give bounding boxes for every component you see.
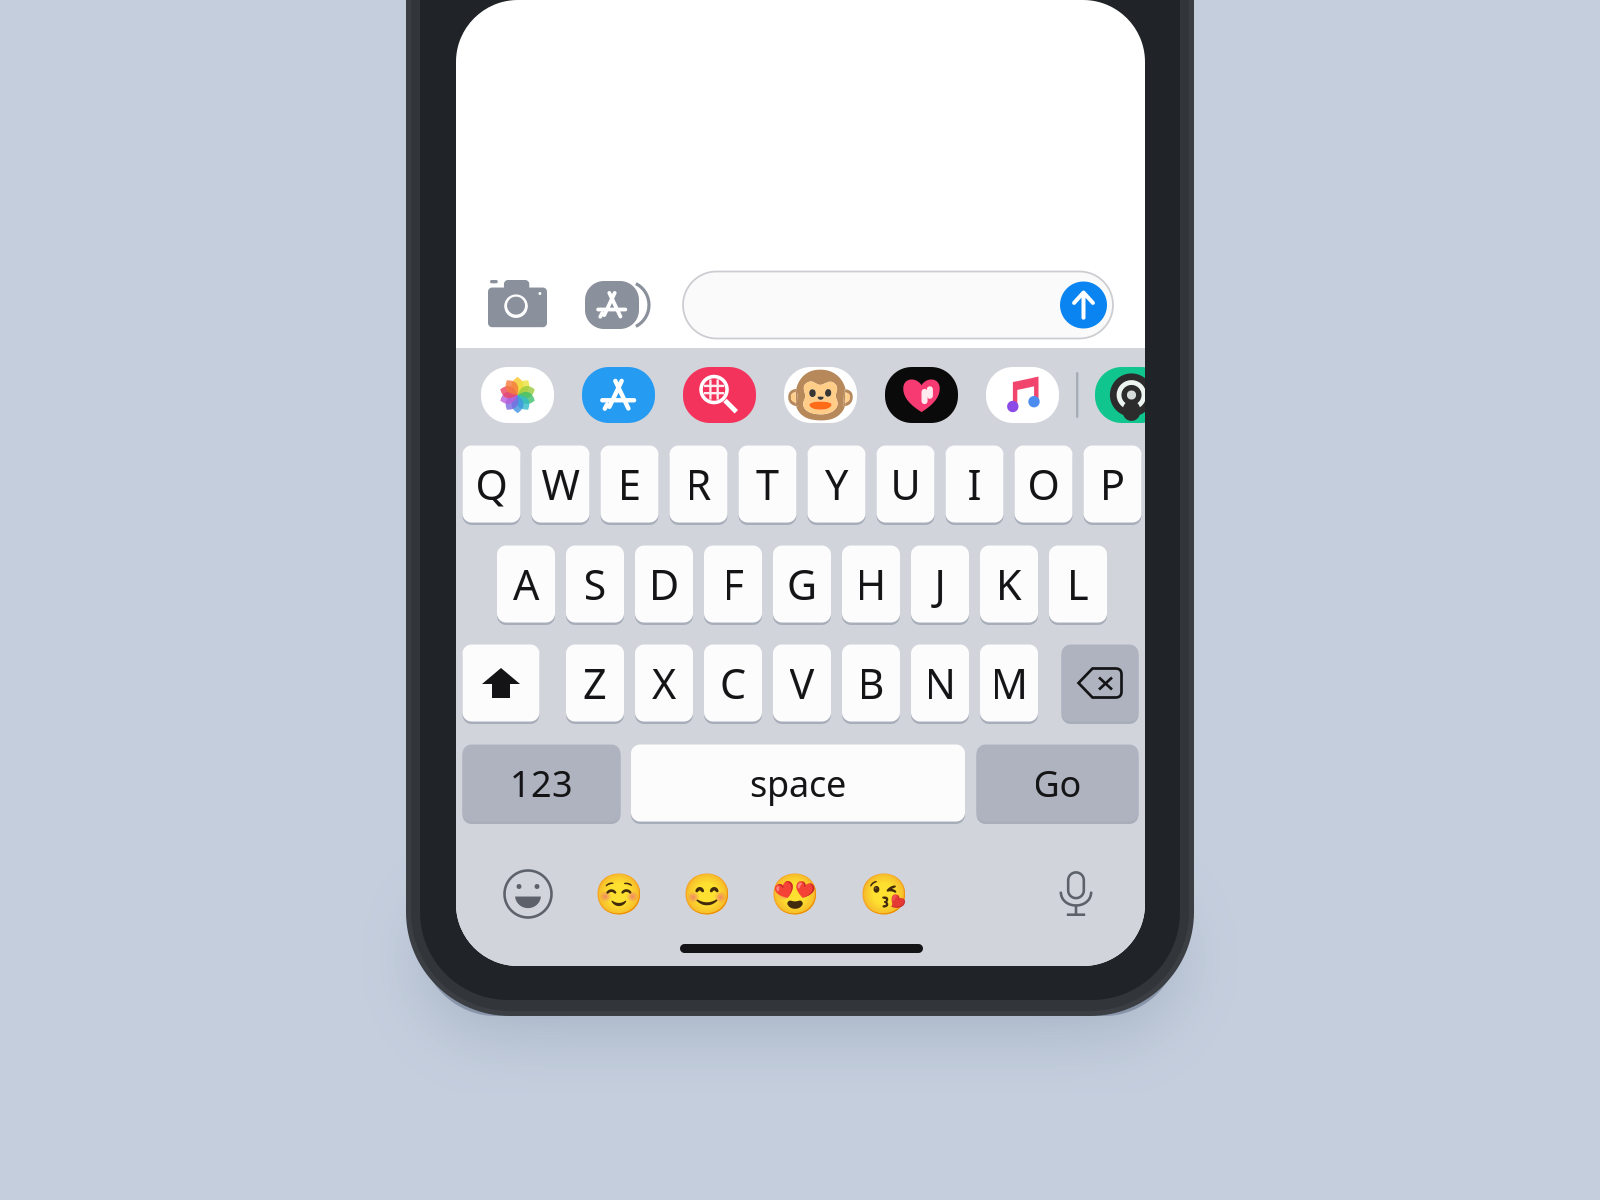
button[interactable]: space: [631, 743, 965, 823]
button[interactable]: More apps: [1095, 367, 1168, 423]
button[interactable]: Go: [976, 743, 1138, 823]
staticText: Go: [1033, 759, 1081, 807]
staticText: D: [649, 557, 679, 611]
button[interactable]: Images: [683, 367, 756, 423]
staticText: B: [857, 656, 884, 710]
staticText: K: [996, 557, 1022, 611]
button[interactable]: App Store: [585, 281, 657, 331]
button[interactable]: Q: [462, 444, 520, 524]
staticText: V: [789, 656, 814, 710]
staticText: E: [618, 457, 641, 511]
button[interactable]: Face blowing a kiss: [859, 869, 909, 919]
button[interactable]: Digital Touch: [885, 367, 958, 423]
staticText: J: [934, 557, 945, 611]
button[interactable]: G: [773, 544, 831, 624]
button[interactable]: Smiling face: [594, 869, 644, 919]
staticText: C: [720, 656, 746, 710]
staticText: N: [924, 656, 955, 710]
staticText: L: [1067, 557, 1089, 611]
button[interactable]: Smiling face with heart eyes: [770, 869, 820, 919]
button[interactable]: Photos: [481, 367, 554, 423]
button[interactable]: L: [1049, 544, 1107, 624]
button[interactable]: Send: [1060, 281, 1107, 328]
staticText: 😘: [859, 871, 909, 917]
button[interactable]: P: [1083, 444, 1141, 524]
button[interactable]: T: [738, 444, 796, 524]
staticText: Z: [583, 656, 607, 710]
button[interactable]: App Store: [582, 367, 655, 423]
staticText: A: [513, 557, 539, 611]
button[interactable]: J: [911, 544, 969, 624]
button[interactable]: Z: [566, 643, 624, 723]
staticText: Y: [825, 457, 848, 511]
button[interactable]: Memoji: [784, 367, 857, 423]
button[interactable]: Shift: [462, 643, 539, 723]
staticText: O: [1027, 457, 1059, 511]
staticText: ☺️: [594, 871, 644, 917]
staticText: W: [541, 457, 579, 511]
staticText: T: [756, 457, 779, 511]
button[interactable]: 123: [462, 743, 620, 823]
button[interactable]: R: [669, 444, 727, 524]
button[interactable]: Y: [807, 444, 865, 524]
button[interactable]: E: [600, 444, 658, 524]
staticText: R: [685, 457, 711, 511]
button[interactable]: X: [635, 643, 693, 723]
button[interactable]: S: [566, 544, 624, 624]
button[interactable]: N: [911, 643, 969, 723]
button[interactable]: W: [531, 444, 589, 524]
staticText: 😍: [770, 871, 820, 917]
button[interactable]: F: [704, 544, 762, 624]
staticText: S: [583, 557, 606, 611]
staticText: G: [787, 557, 817, 611]
staticText: X: [652, 656, 676, 710]
button[interactable]: M: [980, 643, 1038, 723]
button[interactable]: H: [842, 544, 900, 624]
staticText: 🐵: [784, 361, 857, 428]
staticText: P: [1100, 457, 1125, 511]
button[interactable]: Smiling face with smiling eyes: [682, 869, 732, 919]
staticText: F: [722, 557, 743, 611]
staticText: 😊: [682, 871, 732, 917]
button[interactable]: U: [876, 444, 934, 524]
staticText: I: [967, 457, 981, 511]
button[interactable]: Delete: [1061, 643, 1138, 723]
staticText: U: [890, 457, 920, 511]
staticText: Q: [475, 457, 507, 511]
button[interactable]: Camera: [476, 273, 560, 337]
button[interactable]: C: [704, 643, 762, 723]
button[interactable]: Music: [986, 367, 1059, 423]
button[interactable]: D: [635, 544, 693, 624]
button[interactable]: K: [980, 544, 1038, 624]
button[interactable]: Dictation: [1053, 871, 1099, 917]
button[interactable]: B: [842, 643, 900, 723]
button[interactable]: I: [945, 444, 1003, 524]
staticText: space: [750, 759, 846, 807]
button[interactable]: Emoji keyboard: [503, 869, 553, 919]
button[interactable]: V: [773, 643, 831, 723]
button[interactable]: A: [497, 544, 555, 624]
staticText: M: [990, 656, 1027, 710]
staticText: 123: [510, 759, 573, 807]
button[interactable]: O: [1014, 444, 1072, 524]
staticText: H: [855, 557, 886, 611]
